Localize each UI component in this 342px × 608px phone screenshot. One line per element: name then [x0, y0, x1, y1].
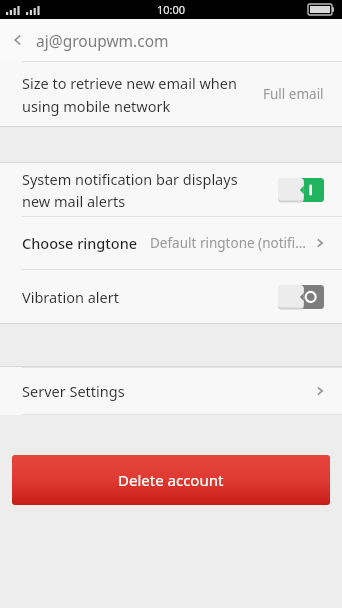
staticText: 10:00 [157, 2, 186, 17]
button[interactable]: Choose ringtone [0, 217, 342, 269]
button[interactable]: Server Settings [0, 368, 342, 414]
staticText: aj@groupwm.com [36, 30, 169, 51]
staticText: using mobile network [22, 96, 171, 116]
button[interactable]: Switch on [278, 178, 324, 202]
staticText: Server Settings [22, 381, 314, 401]
staticText: Full email [263, 85, 324, 103]
staticText: Delete account [118, 470, 224, 490]
button[interactable]: Back [0, 19, 36, 61]
button[interactable]: Size to retrieve new email when [0, 62, 342, 126]
staticText: Size to retrieve new email when [22, 73, 237, 93]
staticText: Default ringtone (notifi… [150, 234, 314, 252]
button[interactable]: Delete account [12, 455, 330, 505]
button[interactable]: System notification bar displays [0, 163, 342, 216]
button[interactable]: Vibration alert [0, 270, 342, 323]
staticText: new mail alerts [22, 191, 126, 211]
staticText: Vibration alert [22, 287, 278, 307]
button[interactable]: Switch off [278, 285, 324, 309]
staticText: System notification bar displays [22, 169, 238, 189]
staticText: Choose ringtone [22, 233, 138, 253]
